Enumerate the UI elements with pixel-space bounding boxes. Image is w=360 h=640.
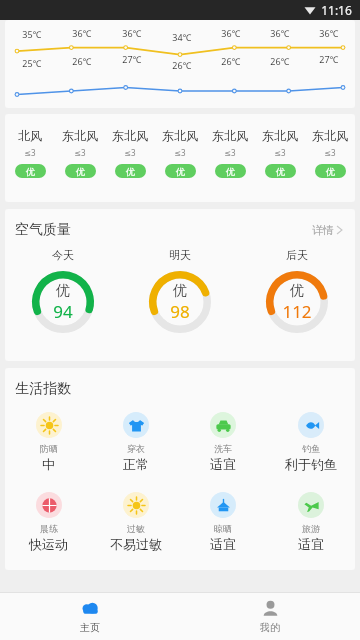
staticText: 26℃ — [221, 55, 241, 67]
staticText: 过敏 — [127, 523, 145, 534]
staticText: ≤3 — [224, 147, 236, 158]
button[interactable]: 我的 — [180, 593, 360, 640]
staticText: 优 — [173, 282, 187, 300]
staticText: 优 — [56, 282, 70, 300]
staticText: 晨练 — [40, 523, 58, 534]
staticText: 我的 — [260, 621, 280, 634]
staticText: 26℃ — [172, 59, 192, 71]
staticText: 优 — [290, 282, 304, 300]
staticText: 穿衣 — [127, 443, 145, 454]
staticText: 27℃ — [122, 53, 142, 65]
staticText: 东北风 — [262, 128, 298, 143]
staticText: 优 — [276, 166, 285, 177]
staticText: 防晒 — [40, 443, 58, 454]
staticText: 洗车 — [214, 443, 232, 454]
staticText: 东北风 — [162, 128, 198, 143]
button[interactable]: 防晒 — [5, 408, 92, 476]
staticText: 东北风 — [62, 128, 98, 143]
staticText: 晾晒 — [214, 523, 232, 534]
staticText: 优 — [126, 166, 135, 177]
staticText: ≤3 — [324, 147, 336, 158]
button[interactable]: 东北风 — [255, 128, 305, 178]
staticText: 36℃ — [270, 27, 290, 39]
staticText: 优 — [26, 166, 35, 177]
staticText: ≤3 — [124, 147, 136, 158]
button[interactable]: 东北风 — [205, 128, 255, 178]
staticText: ≤3 — [174, 147, 186, 158]
staticText: 34℃ — [172, 31, 192, 43]
button[interactable]: 晨练 — [5, 488, 92, 556]
button[interactable]: 东北风 — [105, 128, 155, 178]
staticText: 利于钓鱼 — [285, 456, 337, 472]
button[interactable]: 穿衣 — [92, 408, 179, 476]
staticText: ≤3 — [24, 147, 36, 158]
staticText: 旅游 — [302, 523, 320, 534]
staticText: 北风 — [18, 128, 42, 143]
staticText: 详情 — [312, 223, 334, 237]
button[interactable]: 详情 — [309, 220, 345, 240]
staticText: 主页 — [80, 621, 100, 634]
staticText: 11:16 — [321, 2, 352, 18]
staticText: 94 — [53, 300, 73, 323]
staticText: 生活指数 — [15, 380, 71, 398]
staticText: 优 — [226, 166, 235, 177]
staticText: 36℃ — [221, 27, 241, 39]
staticText: ≤3 — [274, 147, 286, 158]
staticText: 空气质量 — [15, 221, 71, 239]
staticText: 正常 — [123, 456, 149, 472]
button[interactable]: 后天 — [238, 248, 355, 333]
staticText: 优 — [76, 166, 85, 177]
staticText: 后天 — [286, 248, 308, 262]
staticText: 27℃ — [319, 53, 339, 65]
staticText: 东北风 — [312, 128, 348, 143]
button[interactable]: 过敏 — [92, 488, 179, 556]
staticText: 中 — [42, 456, 55, 472]
staticText: 优 — [326, 166, 335, 177]
button[interactable]: 旅游 — [267, 488, 355, 556]
staticText: 35℃ — [22, 28, 42, 40]
staticText: ≤3 — [74, 147, 86, 158]
button[interactable]: 晾晒 — [179, 488, 267, 556]
staticText: 112 — [282, 300, 312, 323]
staticText: 25℃ — [22, 57, 42, 69]
staticText: 26℃ — [72, 55, 92, 67]
button[interactable]: 主页 — [0, 593, 180, 640]
staticText: 明天 — [169, 248, 191, 262]
staticText: 优 — [176, 166, 185, 177]
button[interactable]: 今天 — [5, 248, 121, 333]
button[interactable]: 钓鱼 — [267, 408, 355, 476]
staticText: 26℃ — [270, 55, 290, 67]
button[interactable]: 北风 — [5, 128, 55, 178]
staticText: 98 — [170, 300, 190, 323]
staticText: 东北风 — [112, 128, 148, 143]
staticText: 东北风 — [212, 128, 248, 143]
button[interactable]: 东北风 — [155, 128, 205, 178]
staticText: 今天 — [52, 248, 74, 262]
staticText: 适宜 — [210, 536, 236, 552]
button[interactable]: 东北风 — [305, 128, 355, 178]
button[interactable]: 洗车 — [179, 408, 267, 476]
staticText: 适宜 — [298, 536, 324, 552]
button[interactable]: 明天 — [121, 248, 238, 333]
button[interactable]: 东北风 — [55, 128, 105, 178]
staticText: 快运动 — [29, 536, 68, 552]
staticText: 36℃ — [72, 27, 92, 39]
staticText: 适宜 — [210, 456, 236, 472]
staticText: 36℃ — [319, 27, 339, 39]
staticText: 钓鱼 — [302, 443, 320, 454]
staticText: 36℃ — [122, 27, 142, 39]
staticText: 不易过敏 — [110, 536, 162, 552]
